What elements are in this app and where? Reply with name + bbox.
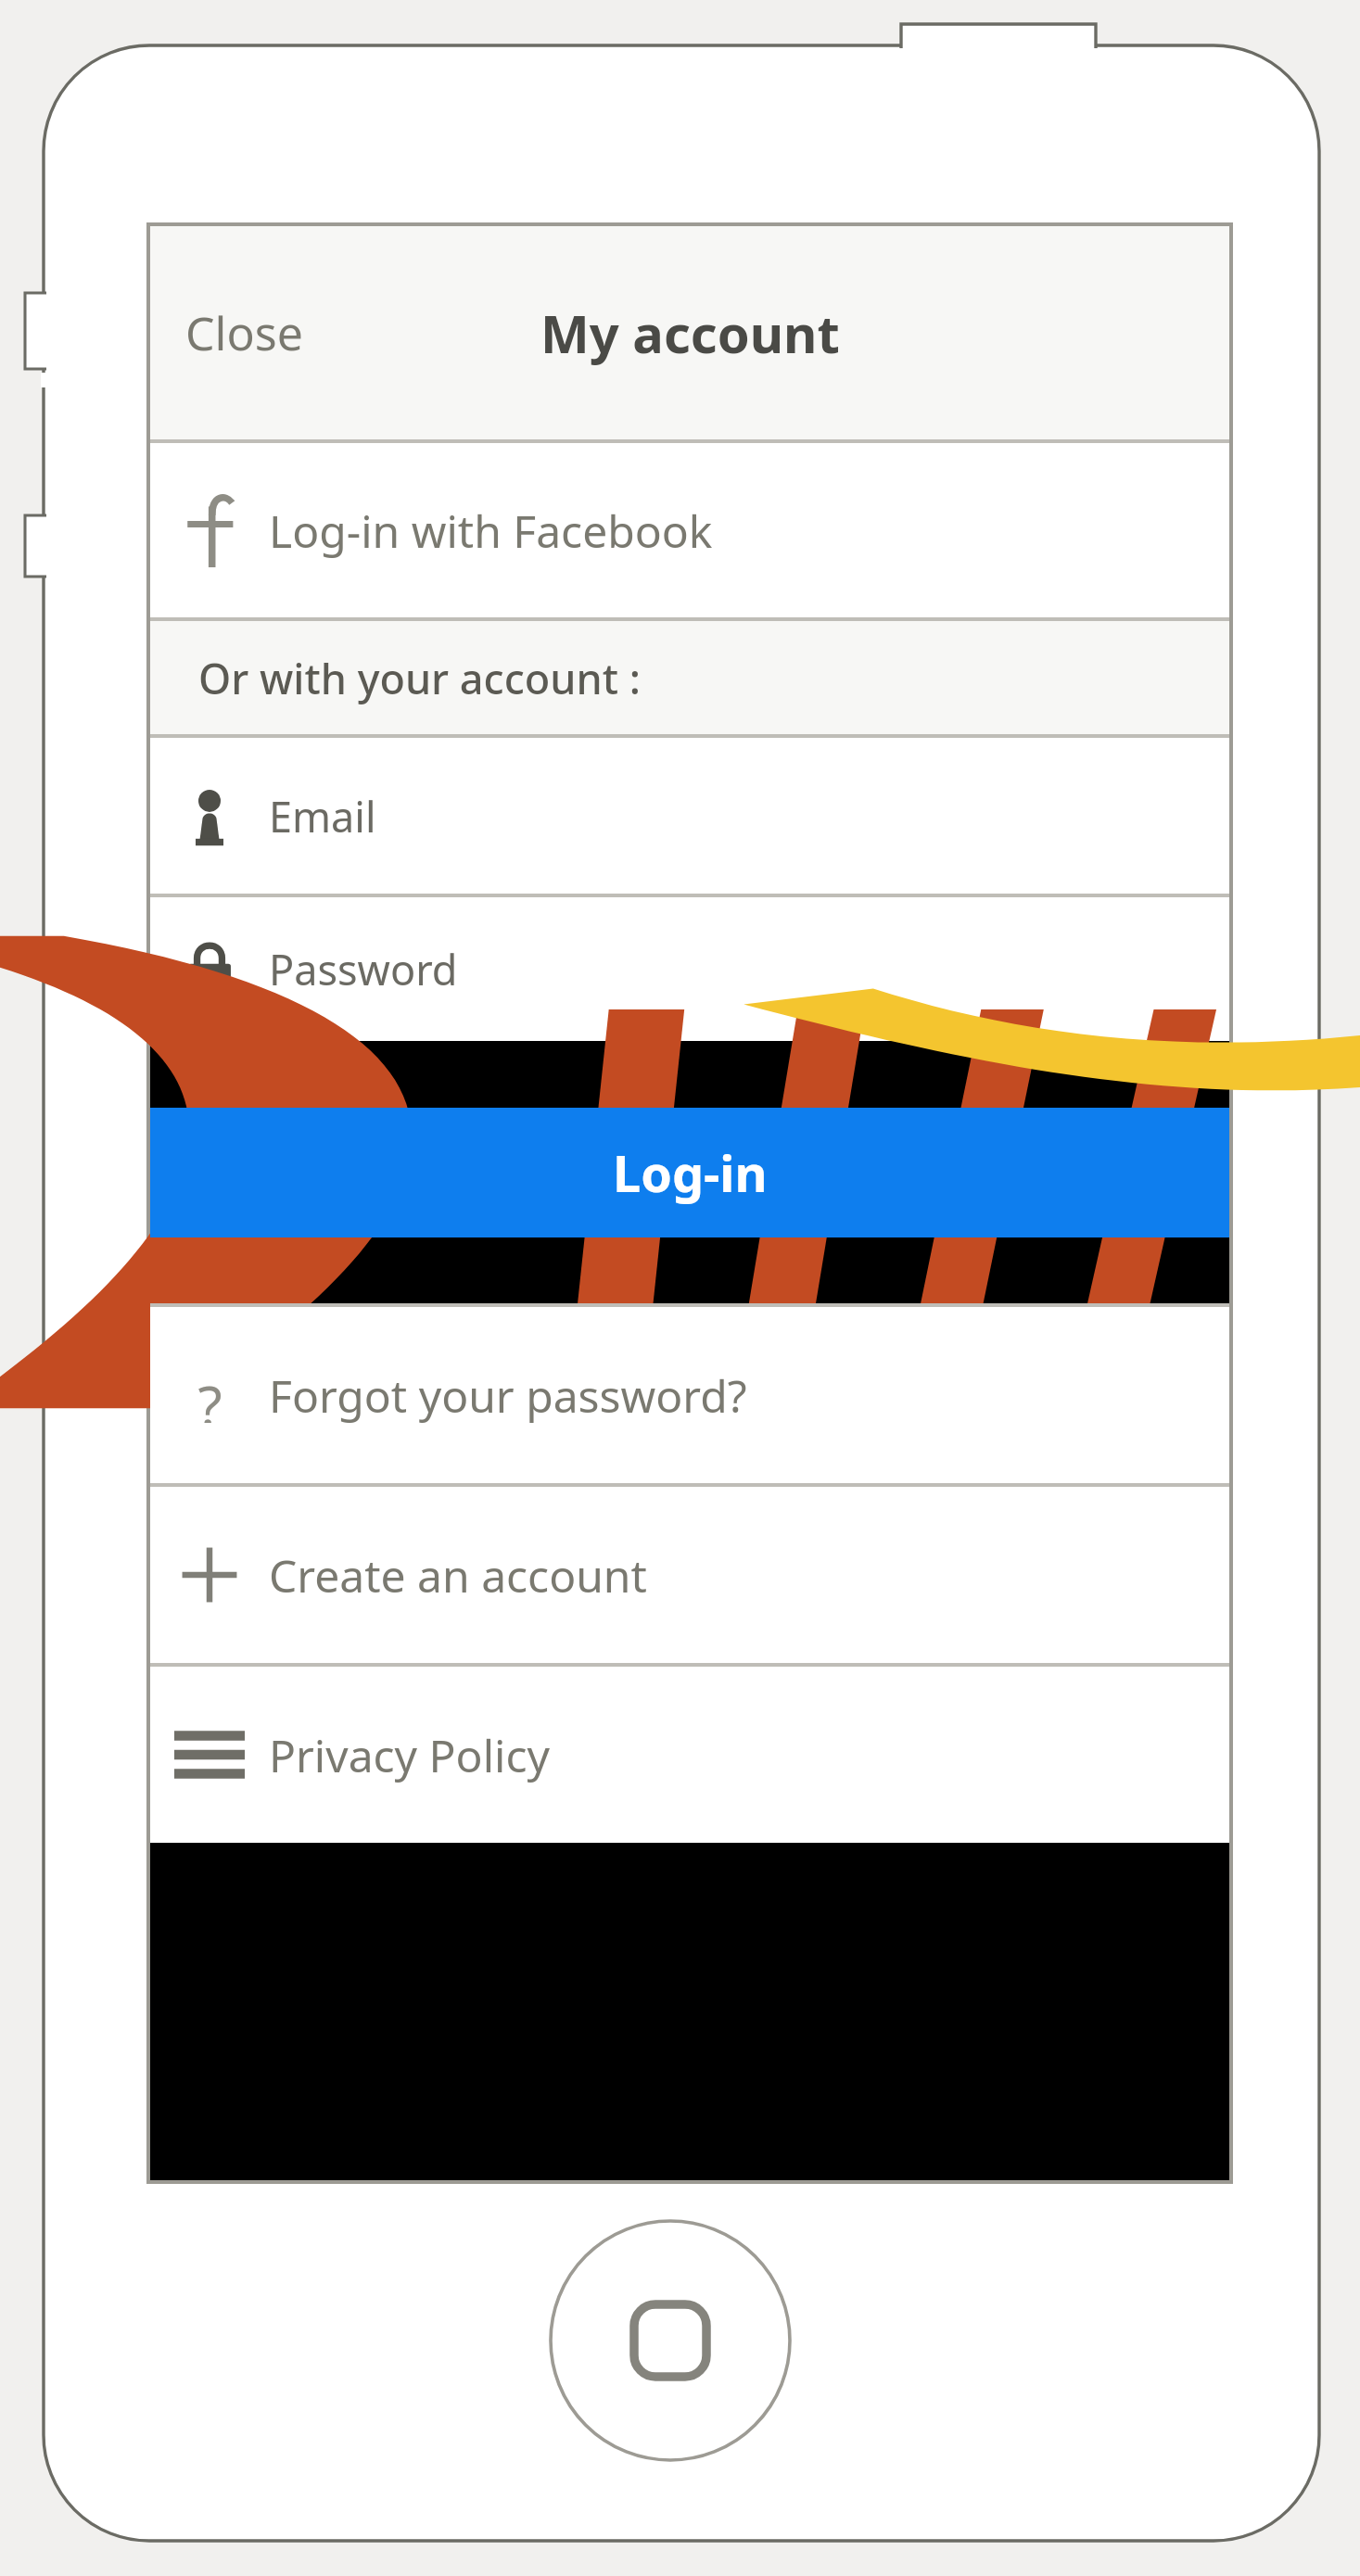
button[interactable]: Create an account [150,1487,1229,1663]
button[interactable]: Privacy Policy [150,1667,1229,1843]
staticText: Forgot your password? [269,1365,747,1426]
other: Create an account [180,1545,239,1605]
staticText: Email [269,788,376,844]
other: Log in with Facebook [184,493,235,567]
button[interactable]: Password [150,897,1229,1041]
button[interactable]: Forgot your password [150,1307,1229,1483]
staticText: My account [540,298,840,368]
button[interactable]: Log in with Facebook [150,443,1229,617]
staticText: Create an account [269,1545,647,1605]
button[interactable]: Email [150,738,1229,894]
other: Email [186,787,233,844]
staticText: Password [269,941,458,997]
staticText: Or with your account : [198,650,641,706]
other: Privacy Policy [174,1730,245,1780]
staticText: Log-in [613,1138,768,1207]
staticText: Log-in with Facebook [269,501,713,561]
staticText: Close [185,301,303,364]
other: Password [184,941,235,998]
staticText: ? [197,1367,222,1423]
button[interactable]: Log-in [150,1108,1229,1237]
button[interactable]: Close [178,290,311,375]
staticText: Privacy Policy [269,1725,550,1785]
other: Forgot your password [182,1367,237,1423]
